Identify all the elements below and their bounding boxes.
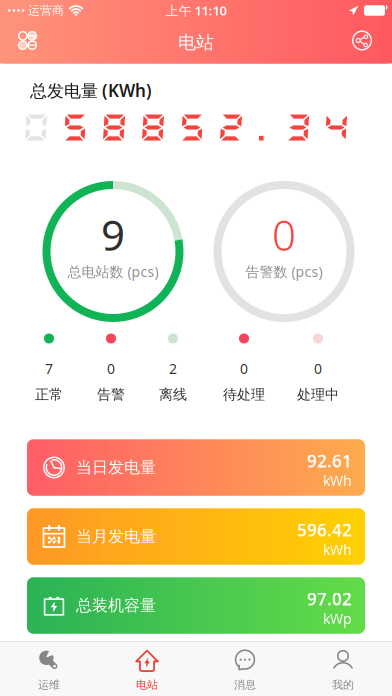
staticText: 离线 [159, 386, 187, 403]
button[interactable]: 消息 [196, 642, 294, 696]
staticText: 我的 [332, 678, 354, 692]
button[interactable]: 总装机容量 [27, 577, 365, 633]
staticText: 正常 [35, 386, 63, 403]
staticText: 电站 [178, 31, 214, 53]
staticText: 运维 [38, 678, 60, 692]
staticText: 告警 [97, 386, 125, 403]
staticText: 92.61 [307, 450, 352, 472]
staticText: 电站 [136, 678, 158, 692]
staticText: 7 [45, 359, 53, 378]
staticText: 消息 [234, 678, 256, 692]
staticText: 总发电量 (KWh) [30, 79, 152, 102]
staticText: 9 [101, 207, 125, 262]
staticText: 上午 11:10 [165, 2, 226, 19]
staticText: 处理中 [297, 386, 339, 403]
staticText: kWp [323, 609, 352, 628]
staticText: 97.02 [307, 588, 352, 610]
staticText: kWh [323, 540, 352, 559]
button[interactable] [352, 30, 372, 50]
staticText: 0 [314, 359, 322, 378]
button[interactable]: 当月发电量 [27, 508, 365, 564]
button[interactable]: 运维 [0, 642, 98, 696]
staticText: 当月发电量 [76, 527, 156, 546]
staticText: 总电站数 (pcs) [67, 262, 158, 281]
staticText: 总装机容量 [76, 596, 156, 615]
staticText: 0 [272, 207, 296, 262]
staticText: 待处理 [223, 386, 265, 403]
staticText: 596.42 [297, 519, 352, 541]
staticText: 告警数 (pcs) [245, 262, 322, 281]
staticText: 2 [169, 359, 177, 378]
button[interactable]: 我的 [294, 642, 392, 696]
button[interactable]: 当日发电量 [27, 439, 365, 495]
staticText: 0 [240, 359, 248, 378]
button[interactable]: 电站 [98, 642, 196, 696]
staticText: 0 [107, 359, 115, 378]
button[interactable] [18, 31, 37, 50]
staticText: 当日发电量 [76, 458, 156, 477]
staticText: 运营商 [28, 3, 64, 18]
staticText: kWh [323, 471, 352, 490]
